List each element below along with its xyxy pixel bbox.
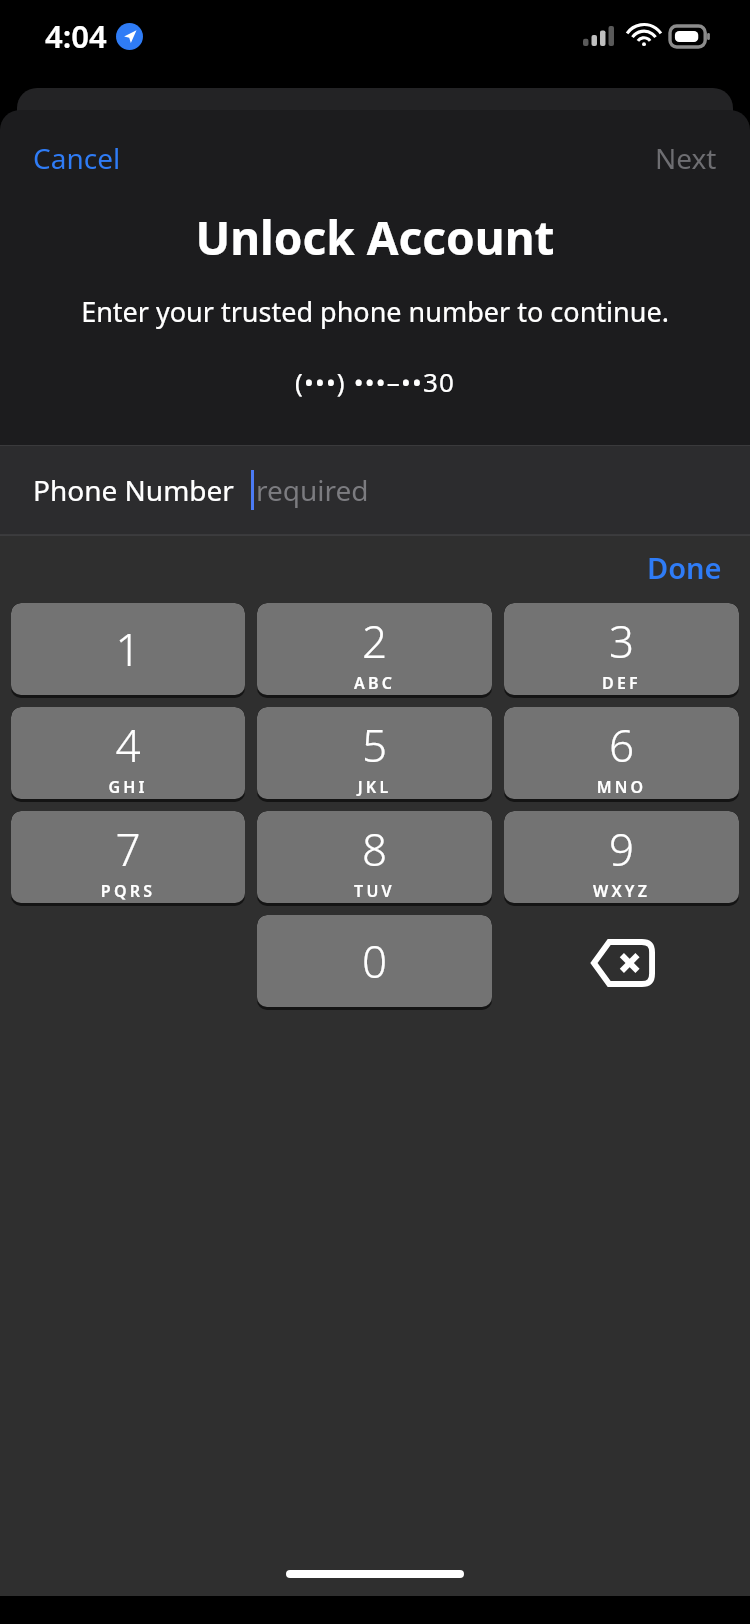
staticText: Next xyxy=(655,139,717,177)
staticText: 1 xyxy=(11,619,245,679)
staticText: 3 xyxy=(504,611,739,671)
button[interactable]: 6 xyxy=(504,707,739,802)
staticText: DEF xyxy=(504,672,739,694)
button[interactable]: Cancel xyxy=(16,129,138,187)
button[interactable]: 3 xyxy=(504,603,739,698)
button[interactable]: 1 xyxy=(11,603,245,698)
button[interactable]: Phone Number xyxy=(0,446,750,534)
staticText: MNO xyxy=(504,776,739,798)
staticText: GHI xyxy=(11,776,245,798)
staticText: (•••) •••–••30 xyxy=(20,364,730,399)
staticText: 4 xyxy=(11,715,245,775)
staticText: 5 xyxy=(257,715,492,775)
button[interactable]: Done xyxy=(633,540,736,595)
staticText: required xyxy=(256,471,369,509)
staticText: 8 xyxy=(257,819,492,879)
staticText: Cancel xyxy=(33,139,121,177)
staticText: WXYZ xyxy=(504,880,739,902)
staticText: 4:04 xyxy=(45,15,107,57)
button[interactable]: Next xyxy=(638,129,734,187)
staticText: ABC xyxy=(257,672,492,694)
staticText: 6 xyxy=(504,715,739,775)
staticText: 0 xyxy=(257,931,492,991)
staticText: Done xyxy=(647,548,722,587)
staticText: Unlock Account xyxy=(20,206,730,269)
button[interactable]: 9 xyxy=(504,811,739,906)
button[interactable]: 7 xyxy=(11,811,245,906)
button[interactable]: 0 xyxy=(257,915,492,1010)
button[interactable]: 2 xyxy=(257,603,492,698)
staticText: 7 xyxy=(11,819,245,879)
button[interactable]: Backspace xyxy=(504,915,739,1010)
staticText: Enter your trusted phone number to conti… xyxy=(20,293,730,330)
staticText: 9 xyxy=(504,819,739,879)
staticText: 2 xyxy=(257,611,492,671)
staticText: PQRS xyxy=(11,880,245,902)
button[interactable]: 4 xyxy=(11,707,245,802)
staticText: JKL xyxy=(257,776,492,798)
button[interactable]: 8 xyxy=(257,811,492,906)
staticText: TUV xyxy=(257,880,492,902)
staticText: Phone Number xyxy=(33,471,234,509)
button[interactable]: 5 xyxy=(257,707,492,802)
